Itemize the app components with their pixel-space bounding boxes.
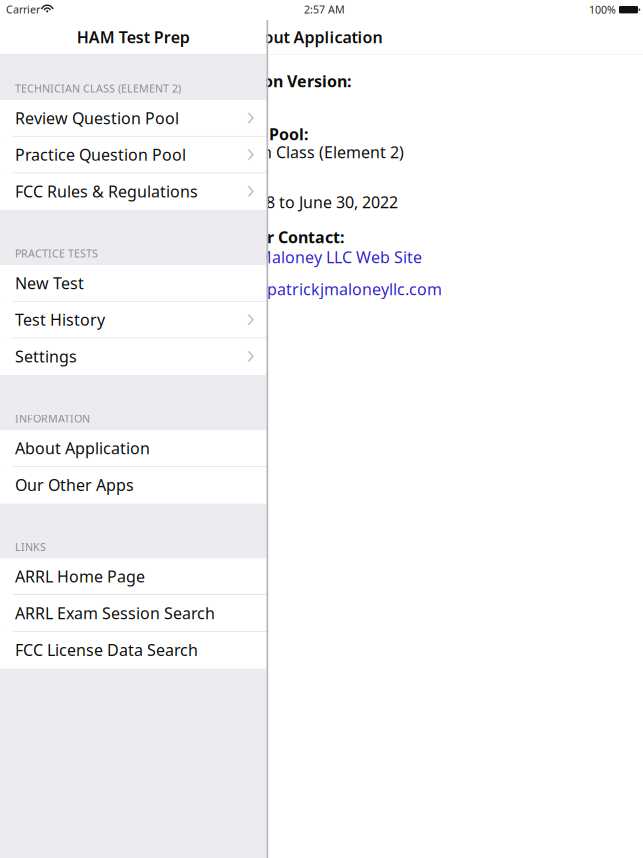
staticText: LINKS <box>15 540 46 554</box>
staticText: Developer Contact: <box>192 226 344 248</box>
button[interactable]: ARRL Exam Session Search <box>0 595 266 632</box>
staticText: FCC Rules & Regulations <box>15 181 198 202</box>
button[interactable]: Settings <box>0 338 266 375</box>
staticText: support@patrickjmaloneyllc.com <box>192 278 442 300</box>
staticText: PRACTICE TESTS <box>15 246 98 260</box>
staticText: New Test <box>15 272 84 294</box>
staticText: INFORMATION <box>15 411 90 426</box>
staticText: ARRL Exam Session Search <box>15 602 215 624</box>
staticText: Our Other Apps <box>15 474 134 495</box>
button[interactable]: Test History <box>0 302 266 338</box>
staticText: Review Question Pool <box>15 107 179 129</box>
button[interactable]: FCC Rules & Regulations <box>0 173 266 210</box>
staticText: About Application <box>15 437 150 459</box>
staticText: ARRL Home Page <box>15 566 145 587</box>
staticText: About Application <box>242 26 382 48</box>
staticText: HAM Test Prep <box>77 26 190 48</box>
button[interactable]: Review Question Pool <box>0 100 266 137</box>
staticText: Question Pool: <box>192 123 308 145</box>
button[interactable]: FCC License Data Search <box>0 632 266 668</box>
button[interactable]: About Application <box>0 430 266 467</box>
staticText: Carrier <box>6 2 40 16</box>
staticText: FCC License Data Search <box>15 639 198 660</box>
staticText: July 1, 2018 to June 30, 2022 <box>192 191 398 213</box>
staticText: Test History <box>15 309 105 330</box>
staticText: Technician Class (Element 2) <box>192 141 404 163</box>
staticText: TECHNICIAN CLASS (ELEMENT 2) <box>15 81 181 95</box>
staticText: 100% <box>589 3 616 17</box>
button[interactable]: Patrick J Maloney LLC Web Site <box>192 246 422 268</box>
staticText: Settings <box>15 346 77 367</box>
staticText: Patrick J Maloney LLC Web Site <box>192 246 422 268</box>
button[interactable]: New Test <box>0 265 266 302</box>
staticText: Application Version: <box>192 70 351 92</box>
staticText: Practice Question Pool <box>15 144 186 165</box>
staticText: 2:57 AM <box>304 2 345 16</box>
button[interactable]: Our Other Apps <box>0 467 266 503</box>
button[interactable]: Practice Question Pool <box>0 137 266 173</box>
button[interactable]: ARRL Home Page <box>0 558 266 595</box>
button[interactable]: support@patrickjmaloneyllc.com <box>192 278 442 300</box>
